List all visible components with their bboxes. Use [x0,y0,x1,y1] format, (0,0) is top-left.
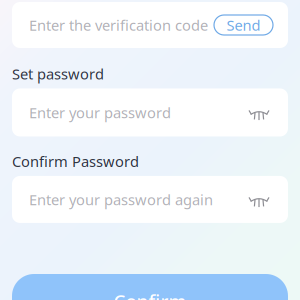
button[interactable]: Confirm [12,274,288,300]
staticText: Enter your password again [29,190,213,209]
staticText: Confirm [113,289,186,300]
staticText: Enter your password [29,103,171,122]
staticText: Send [226,15,260,35]
button[interactable]: Show confirm password [249,191,288,208]
staticText: Confirm Password [12,151,139,171]
button[interactable]: Show password [249,104,288,121]
staticText: Set password [12,64,104,83]
staticText: Enter the verification code [29,15,208,35]
button[interactable]: Send [214,15,273,35]
